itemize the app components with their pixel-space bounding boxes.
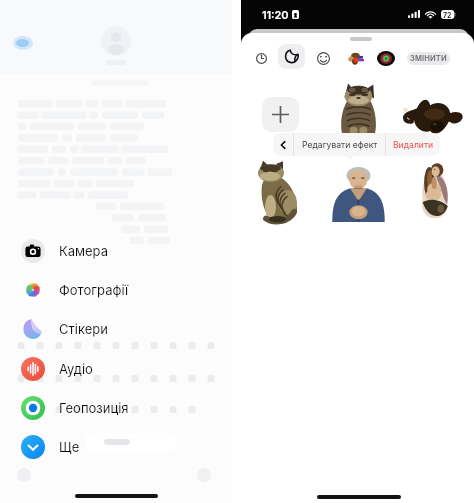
staticText: Геопозиція — [59, 400, 129, 416]
button[interactable]: Геопозиція — [0, 396, 232, 420]
button[interactable]: Stickers — [278, 44, 305, 69]
staticText: ЗМІНИТИ — [410, 54, 447, 63]
button[interactable]: Painting sticker — [416, 162, 453, 223]
button[interactable]: Стікери — [0, 317, 232, 341]
button[interactable]: Add sticker — [262, 97, 299, 132]
button[interactable]: Sitting cat sticker — [254, 160, 304, 225]
button[interactable]: Back — [273, 133, 293, 156]
staticText: 11:20 — [262, 8, 289, 21]
button[interactable]: Emoji — [312, 47, 334, 69]
button[interactable]: Cat sticker — [340, 83, 377, 135]
button[interactable]: Ще — [0, 435, 232, 459]
button[interactable]: Sticker pack — [374, 46, 398, 70]
button[interactable]: Dark cat sticker — [403, 94, 465, 137]
button[interactable]: Аудіо — [0, 357, 232, 381]
button[interactable]: Recent — [250, 47, 272, 69]
button[interactable]: Фотографії — [0, 278, 232, 302]
staticText: Стікери — [59, 321, 108, 337]
button[interactable]: Камера — [0, 239, 232, 263]
staticText: Фотографії — [59, 282, 129, 298]
button[interactable]: Memoji — [344, 46, 368, 70]
staticText: Камера — [59, 243, 109, 259]
staticText: Ще — [59, 439, 80, 455]
staticText: Аудіо — [59, 361, 93, 377]
button[interactable]: ЗМІНИТИ — [407, 52, 450, 65]
staticText: Видалити — [393, 140, 434, 150]
button[interactable]: Редагувати ефект — [294, 133, 385, 156]
staticText: 72 — [443, 11, 452, 19]
button[interactable]: Person sticker — [330, 166, 387, 222]
button[interactable]: Видалити — [386, 133, 440, 156]
staticText: Редагувати ефект — [302, 140, 378, 150]
